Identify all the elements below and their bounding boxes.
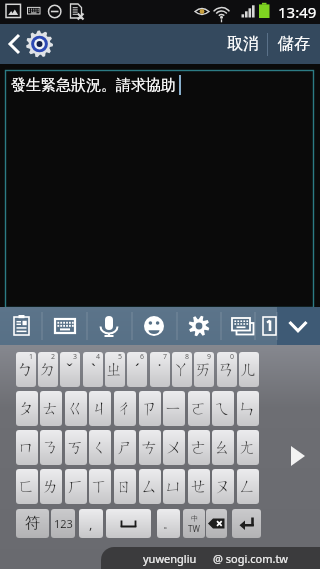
button[interactable]: ㄓ (105, 352, 125, 387)
staticText: ㄜ (190, 437, 208, 458)
button[interactable]: ㄜ (188, 430, 210, 465)
staticText: , (89, 515, 93, 533)
button[interactable]: Back (0, 24, 58, 64)
staticText: ㄚ (173, 359, 191, 380)
staticText: ㄤ (239, 437, 257, 458)
button[interactable]: ㄋ (40, 430, 62, 465)
button[interactable]: Next page (276, 435, 318, 477)
staticText: 0 (230, 352, 235, 362)
button[interactable]: ㄛ (188, 391, 210, 426)
button[interactable]: ㄏ (65, 469, 87, 504)
staticText: ㄙ (141, 476, 159, 497)
button[interactable]: ㄍ (65, 391, 87, 426)
staticText: ㄔ (116, 398, 134, 419)
button[interactable]: Clipboard (0, 307, 42, 345)
staticText: ㄎ (67, 437, 85, 458)
staticText: yuwengliu (143, 551, 197, 566)
button[interactable]: ㄈ (16, 469, 38, 504)
button[interactable]: ㄙ (139, 469, 161, 504)
button[interactable]: ㄚ (172, 352, 192, 387)
button[interactable]: 中 (183, 509, 205, 538)
button[interactable]: ㄦ (239, 352, 259, 387)
staticText: 7 (163, 352, 168, 362)
button[interactable]: ㄒ (89, 469, 111, 504)
button[interactable]: ㄧ (163, 391, 185, 426)
button[interactable]: ㄟ (212, 391, 234, 426)
staticText: 2 (51, 352, 56, 362)
staticText: ㄑ (91, 437, 109, 458)
staticText: ㄦ (240, 359, 258, 380)
button[interactable]: ㄎ (65, 430, 87, 465)
button[interactable]: Hide keyboard (277, 307, 320, 345)
staticText: ㄇ (18, 437, 36, 458)
button[interactable]: Voice input (87, 307, 132, 345)
button[interactable]: Backspace (206, 509, 227, 538)
staticText: ˊ (135, 358, 140, 381)
button[interactable]: ㄇ (16, 430, 38, 465)
button[interactable]: Space (106, 509, 151, 538)
button[interactable]: ˙ (150, 352, 170, 387)
staticText: ㄋ (42, 437, 60, 458)
staticText: ㄥ (239, 476, 257, 497)
button[interactable]: Settings (177, 307, 221, 345)
button[interactable]: ㄝ (188, 469, 210, 504)
button[interactable]: ㄥ (237, 469, 259, 504)
staticText: ㄖ (116, 476, 134, 497)
button[interactable]: 取消 (218, 24, 267, 64)
button[interactable]: ㄊ (40, 391, 62, 426)
staticText: ㄩ (165, 476, 183, 497)
button[interactable]: ㄐ (89, 391, 111, 426)
button[interactable]: ㄔ (114, 391, 136, 426)
staticText: ㄗ (141, 398, 159, 419)
button[interactable]: , (79, 509, 103, 538)
button[interactable]: ㄤ (237, 430, 259, 465)
button[interactable]: ㄌ (40, 469, 62, 504)
staticText: 5 (118, 352, 123, 362)
button[interactable]: ㄕ (114, 430, 136, 465)
button[interactable]: ㄣ (237, 391, 259, 426)
staticText: ㄧ (165, 398, 183, 419)
button[interactable]: Enter (232, 509, 261, 538)
staticText: 取消 (227, 34, 259, 54)
staticText: ㄛ (190, 398, 208, 419)
button[interactable]: ˊ (127, 352, 147, 387)
button[interactable]: ㄆ (16, 391, 38, 426)
button[interactable]: ㄡ (212, 469, 234, 504)
button[interactable]: 符 (16, 509, 49, 538)
button[interactable]: ㄘ (139, 430, 161, 465)
staticText: TW (188, 523, 200, 534)
staticText: ㄆ (18, 398, 36, 419)
button[interactable]: ㄢ (217, 352, 237, 387)
button[interactable]: 儲存 (268, 24, 320, 64)
button[interactable]: ㄗ (139, 391, 161, 426)
button[interactable]: ㄑ (89, 430, 111, 465)
button[interactable]: ˇ (60, 352, 80, 387)
staticText: @ sogi.com.tw (213, 551, 289, 566)
staticText: ㄣ (239, 398, 257, 419)
staticText: ㄟ (214, 398, 232, 419)
staticText: ㄈ (18, 476, 36, 497)
button[interactable]: ㄨ (163, 430, 185, 465)
button[interactable]: ㄖ (114, 469, 136, 504)
staticText: ㄒ (91, 476, 109, 497)
staticText: 。 (163, 517, 174, 531)
button[interactable]: ㄩ (163, 469, 185, 504)
staticText: ㄢ (218, 359, 236, 380)
button[interactable]: Handwriting (255, 307, 277, 345)
staticText: ㄞ (195, 359, 213, 380)
staticText: ˙ (158, 358, 162, 381)
button[interactable]: Keyboard (42, 307, 87, 345)
button[interactable]: ㄅ (16, 352, 36, 387)
staticText: 123 (54, 516, 73, 531)
staticText: ㄕ (116, 437, 134, 458)
button[interactable]: Emoji (132, 307, 177, 345)
button[interactable]: Split keyboard (221, 307, 255, 345)
button[interactable]: ㄉ (38, 352, 58, 387)
button[interactable]: ㄠ (212, 430, 234, 465)
button[interactable]: 。 (157, 509, 180, 538)
button[interactable]: ˋ (83, 352, 103, 387)
button[interactable]: ㄞ (194, 352, 214, 387)
button[interactable]: 123 (51, 509, 75, 538)
staticText: ㄓ (106, 359, 124, 380)
staticText: ㄏ (67, 476, 85, 497)
